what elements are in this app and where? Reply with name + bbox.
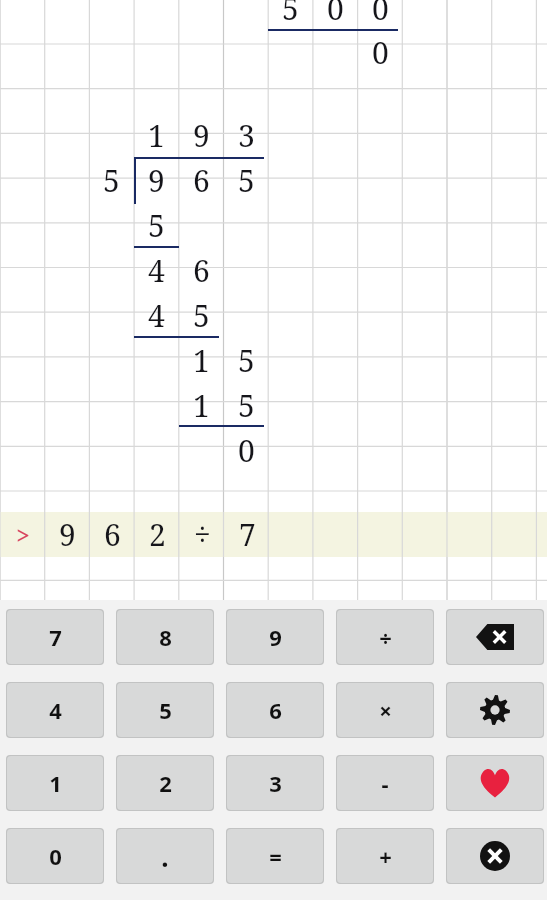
staticText: 5	[148, 205, 165, 246]
staticText: 2	[149, 514, 166, 555]
button[interactable]: +	[337, 829, 433, 883]
staticText: ÷	[194, 514, 211, 555]
staticText: 7	[49, 622, 62, 652]
button[interactable]: 0	[7, 829, 103, 883]
button[interactable]: 7	[7, 610, 103, 664]
button[interactable]: Backspace	[447, 610, 543, 664]
staticText: ÷	[379, 622, 392, 652]
staticText: 6	[193, 160, 210, 201]
button[interactable]: 9	[227, 610, 323, 664]
staticText: 5	[103, 160, 120, 201]
staticText: 5	[238, 340, 255, 381]
button[interactable]: 6	[227, 683, 323, 737]
staticText: 5	[282, 0, 299, 29]
button[interactable]: Settings	[447, 683, 543, 737]
staticText: =	[269, 841, 282, 871]
staticText: 5	[159, 695, 172, 725]
button[interactable]: =	[227, 829, 323, 883]
staticText: 1	[148, 115, 165, 156]
button[interactable]: Clear	[447, 829, 543, 883]
staticText: 4	[148, 295, 165, 336]
staticText: 1	[193, 385, 210, 426]
staticText: 0	[238, 430, 255, 471]
staticText: +	[379, 841, 392, 871]
staticText: 0	[372, 0, 389, 29]
staticText: -	[381, 768, 389, 798]
staticText: 2	[159, 768, 172, 798]
staticText: 5	[238, 160, 255, 201]
button[interactable]: 8	[117, 610, 213, 664]
staticText: 0	[372, 32, 389, 73]
staticText: 4	[148, 250, 165, 291]
button[interactable]: 5	[117, 683, 213, 737]
button[interactable]: Favorite	[447, 756, 543, 810]
staticText: 0	[49, 841, 62, 871]
staticText: 1	[49, 768, 62, 798]
staticText: 5	[193, 295, 210, 336]
staticText: >	[16, 518, 30, 551]
button[interactable]: 3	[227, 756, 323, 810]
staticText: 7	[239, 514, 256, 555]
staticText: 3	[269, 768, 282, 798]
staticText: 9	[269, 622, 282, 652]
staticText: ×	[379, 695, 392, 725]
staticText: 6	[269, 695, 282, 725]
button[interactable]: 4	[7, 683, 103, 737]
button[interactable]: ×	[337, 683, 433, 737]
staticText: 9	[148, 160, 165, 201]
staticText: 0	[327, 0, 344, 29]
staticText: 5	[238, 385, 255, 426]
button[interactable]: -	[337, 756, 433, 810]
button[interactable]: >	[0, 512, 547, 557]
staticText: 6	[193, 250, 210, 291]
staticText: 1	[193, 340, 210, 381]
staticText: 9	[59, 514, 76, 555]
staticText: 8	[159, 622, 172, 652]
staticText: 9	[193, 115, 210, 156]
button[interactable]: .	[117, 829, 213, 883]
staticText: 6	[104, 514, 121, 555]
button[interactable]: ÷	[337, 610, 433, 664]
staticText: 3	[238, 115, 255, 156]
staticText: .	[161, 839, 169, 874]
button[interactable]: 2	[117, 756, 213, 810]
button[interactable]: 1	[7, 756, 103, 810]
staticText: 4	[49, 695, 62, 725]
